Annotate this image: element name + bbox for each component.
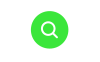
button[interactable]: Search [31, 11, 68, 49]
